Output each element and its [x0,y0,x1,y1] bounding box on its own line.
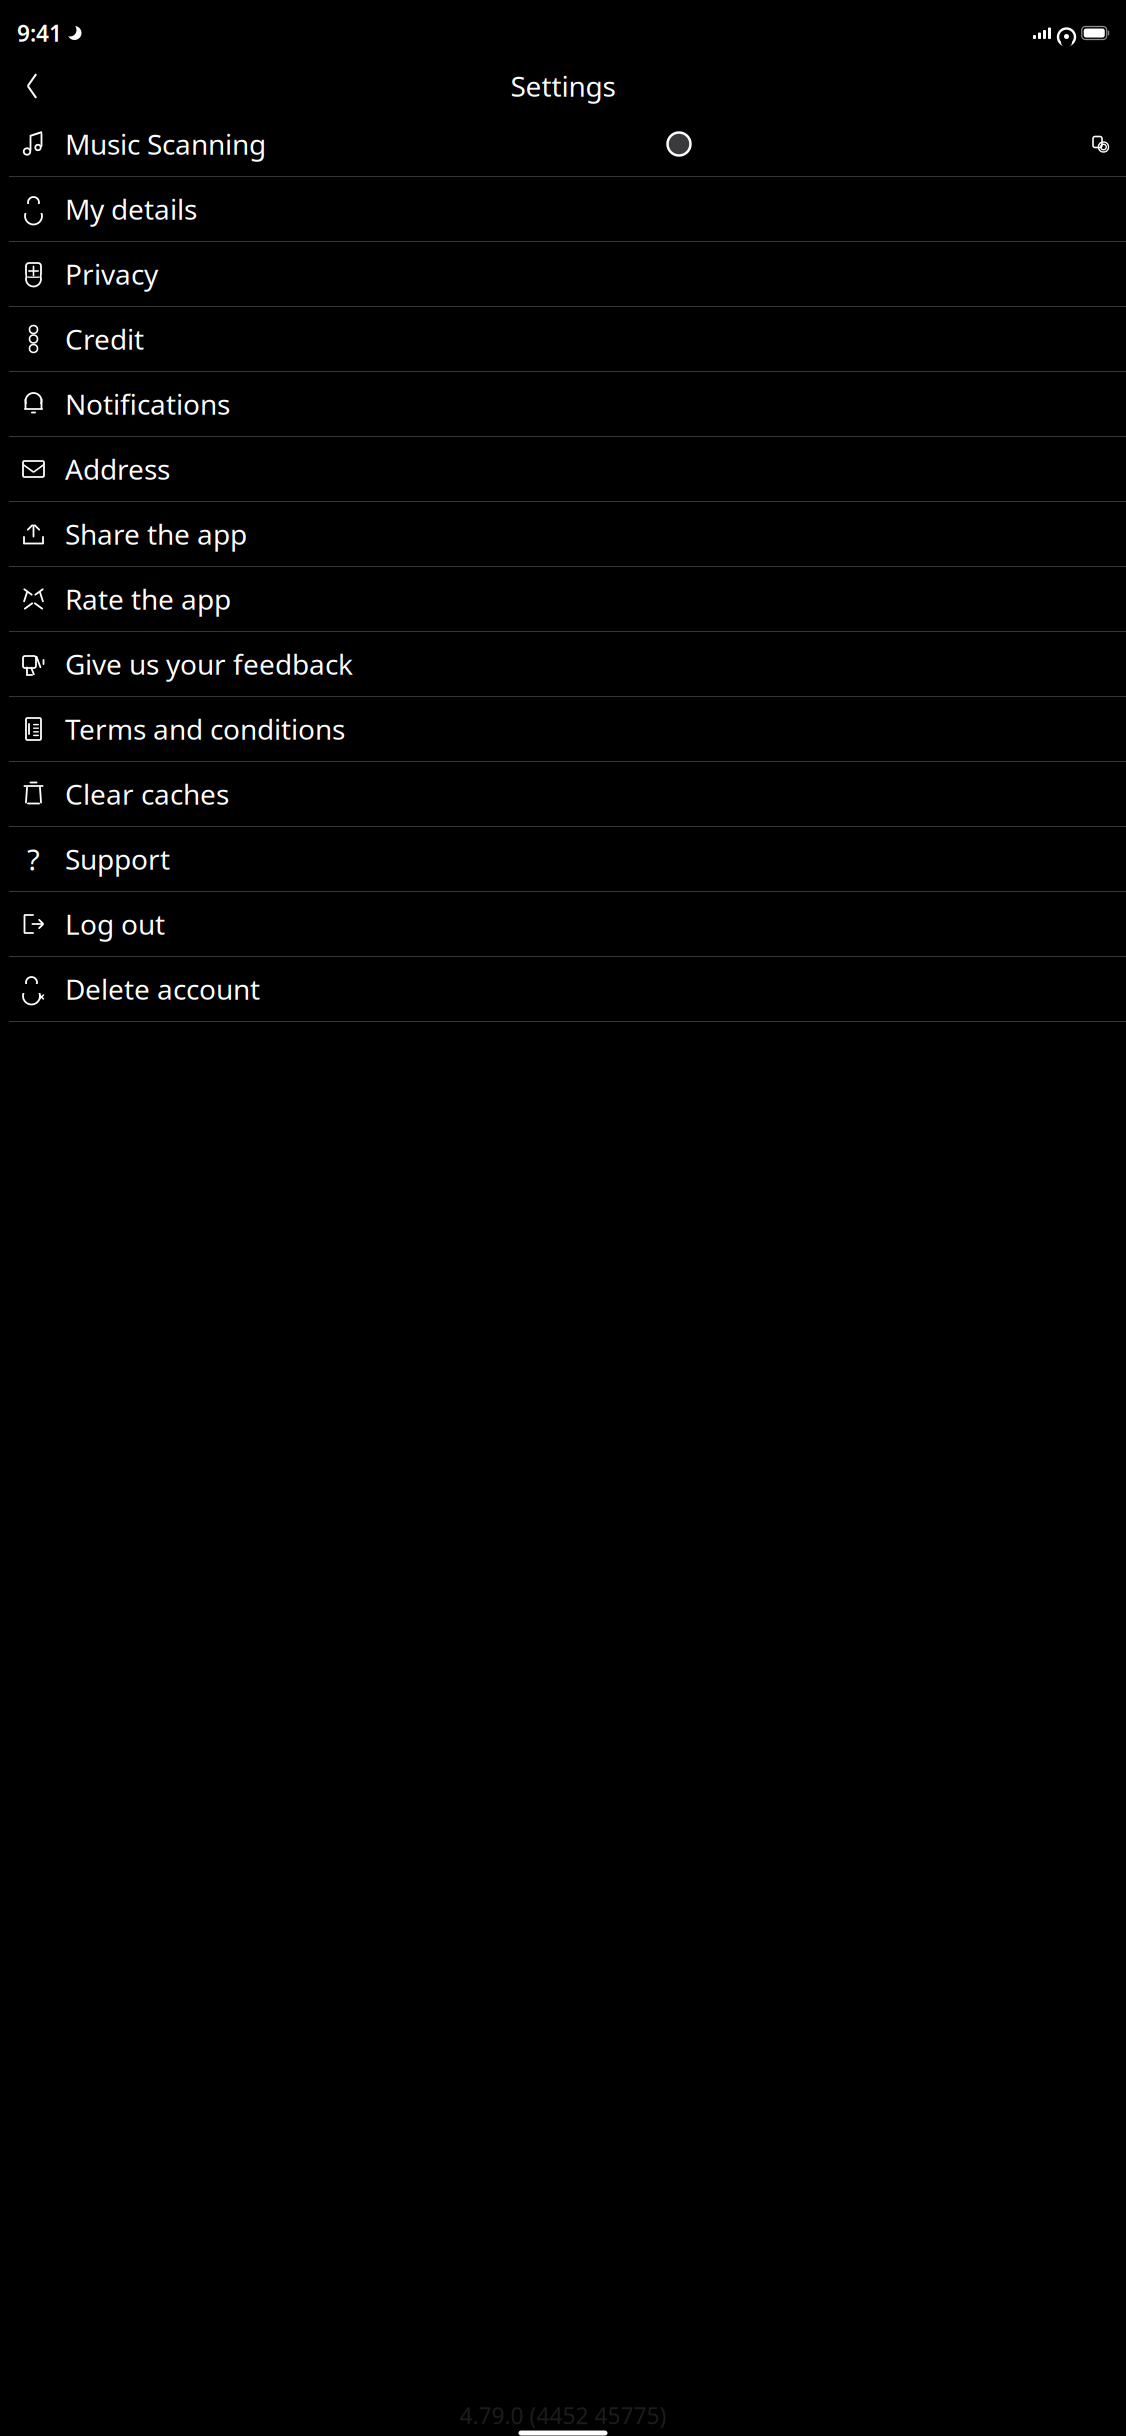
button[interactable]: Notifications [0,372,1126,436]
staticText: Log out [65,905,165,943]
button[interactable]: Delete account [0,957,1126,1021]
staticText: Privacy [65,255,158,293]
button[interactable]: Back [11,65,53,107]
button[interactable]: Address [0,437,1126,501]
button[interactable]: Privacy [0,242,1126,306]
staticText: Delete account [65,970,260,1008]
button[interactable]: Terms and conditions [0,697,1126,761]
staticText: My details [65,190,197,228]
button[interactable]: ? [0,827,1126,891]
button[interactable]: My details [0,177,1126,241]
staticText: 4.79.0 (4452 45775) [459,2400,666,2430]
staticText: Share the app [65,515,247,553]
staticText: Rate the app [65,580,231,618]
button[interactable]: Clear caches [0,762,1126,826]
button[interactable]: Music Scanning [0,112,1126,176]
staticText: Terms and conditions [65,710,345,748]
staticText: ? [27,839,40,878]
staticText: Clear caches [65,775,229,813]
button[interactable]: Share the app [0,502,1126,566]
button[interactable]: Rate the app [0,567,1126,631]
staticText: Credit [65,320,144,358]
button[interactable]: Credit [0,307,1126,371]
staticText: Address [65,450,170,488]
staticText: 9:41 [17,18,62,48]
button[interactable]: Give us your feedback [0,632,1126,696]
staticText: Give us your feedback [65,645,353,683]
button[interactable]: Log out [0,892,1126,956]
staticText: Settings [510,67,615,105]
staticText: Music Scanning [65,125,266,163]
staticText: Notifications [65,385,230,423]
staticText: Support [65,840,170,878]
